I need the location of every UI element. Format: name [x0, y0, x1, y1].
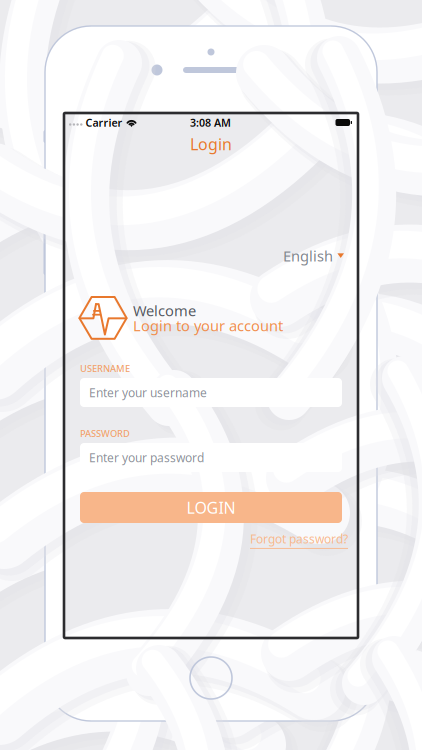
button[interactable]: Enter your password — [80, 443, 342, 472]
button[interactable]: LOGIN — [80, 492, 342, 523]
staticText: PASSWORD — [80, 427, 130, 440]
staticText: Carrier — [85, 115, 122, 130]
button[interactable]: Forgot password? — [250, 531, 348, 549]
staticText: Enter your username — [89, 384, 207, 400]
staticText: Forgot password? — [250, 531, 348, 547]
staticText: USERNAME — [80, 362, 130, 375]
staticText: English — [283, 246, 333, 265]
staticText: Login — [190, 133, 232, 155]
staticText: Login to your account — [133, 316, 283, 335]
staticText: 3:08 AM — [190, 115, 231, 130]
staticText: Welcome — [133, 301, 196, 320]
button[interactable]: English — [283, 242, 344, 269]
button[interactable]: Enter your username — [80, 378, 342, 407]
staticText: Enter your password — [89, 449, 204, 465]
staticText: LOGIN — [186, 497, 235, 518]
